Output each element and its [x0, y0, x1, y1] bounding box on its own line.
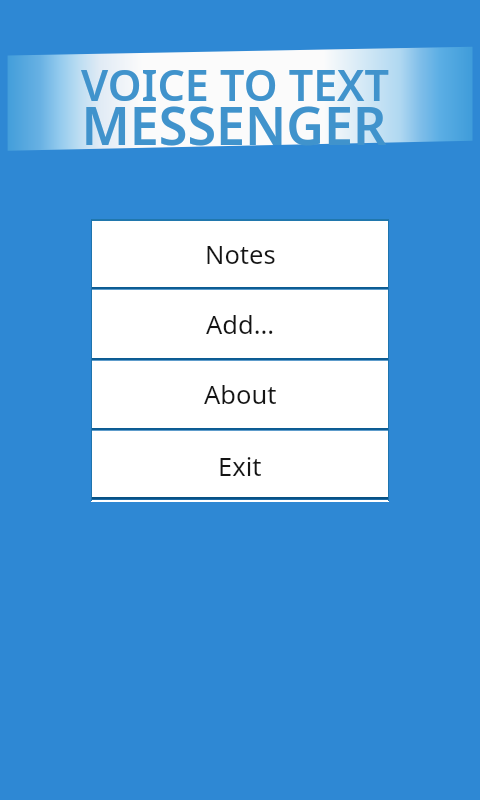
- staticText: About: [204, 377, 277, 412]
- staticText: Notes: [205, 237, 276, 272]
- button[interactable]: Notes: [91, 221, 389, 288]
- staticText: Add...: [206, 307, 275, 342]
- button[interactable]: Exit: [91, 431, 389, 497]
- button[interactable]: About: [91, 361, 389, 428]
- staticText: Exit: [218, 449, 262, 484]
- staticText: VOICE TO TEXT: [0, 55, 475, 114]
- button[interactable]: Add...: [91, 290, 389, 358]
- staticText: MESSENGER: [0, 89, 474, 160]
